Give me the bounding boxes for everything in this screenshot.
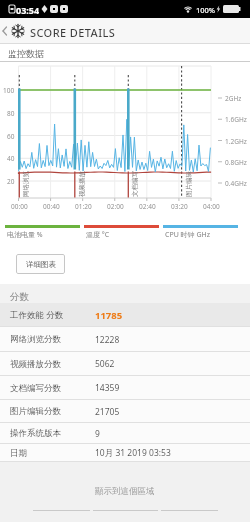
staticText: 01:20: [75, 202, 92, 210]
staticText: 21705: [95, 406, 120, 418]
button[interactable]: 图片编辑分数: [0, 400, 250, 423]
staticText: 03:54: [16, 4, 40, 16]
button[interactable]: 日期: [0, 444, 250, 462]
staticText: 02:00: [107, 202, 124, 210]
staticText: 00:00: [11, 202, 28, 210]
staticText: 网络浏览分数: [10, 334, 61, 345]
staticText: 5062: [95, 358, 115, 370]
button[interactable]: 工作效能 分数: [0, 303, 250, 327]
staticText: 20: [7, 177, 15, 185]
staticText: 14359: [95, 382, 120, 394]
button[interactable]: SCORE DETAILS: [0, 18, 250, 44]
staticText: 03:20: [171, 202, 188, 210]
staticText: CPU 时钟 GHz: [165, 230, 210, 240]
staticText: 温度 °C: [86, 230, 110, 240]
staticText: 02:40: [139, 202, 156, 210]
button[interactable]: 视频播放分数: [0, 352, 250, 376]
staticText: 2GHz: [225, 94, 242, 103]
staticText: SCORE DETAILS: [30, 25, 116, 40]
button[interactable]: 操作系统版本: [0, 423, 250, 444]
staticText: 11785: [95, 309, 123, 322]
staticText: 9: [95, 428, 100, 440]
staticText: 视频播放分数: [10, 359, 61, 370]
staticText: 40: [7, 154, 15, 162]
staticText: 1.6GHz: [225, 115, 247, 124]
staticText: 0.4GHz: [225, 179, 247, 188]
staticText: 图片编辑: [185, 171, 193, 197]
staticText: 顯示到這個區域: [95, 486, 155, 497]
staticText: 文档编写: [131, 171, 139, 197]
staticText: 60: [7, 132, 15, 140]
staticText: 监控数据: [8, 48, 44, 59]
staticText: 80: [7, 109, 15, 117]
staticText: 04:00: [203, 202, 220, 210]
staticText: 文档编写分数: [10, 383, 61, 394]
staticText: 视频播放: [78, 171, 86, 197]
staticText: 电池电量 %: [7, 230, 43, 240]
staticText: 00:40: [43, 202, 60, 210]
button[interactable]: 文档编写分数: [0, 376, 250, 400]
staticText: 分数: [10, 291, 29, 303]
staticText: 10月 31 2019 03:53: [95, 447, 171, 459]
staticText: 图片编辑分数: [10, 406, 61, 417]
staticText: 0.8GHz: [225, 158, 247, 167]
staticText: 网络浏览: [22, 171, 30, 197]
staticText: 1.2GHz: [225, 137, 247, 146]
staticText: 12228: [95, 334, 120, 346]
staticText: 详细图表: [26, 260, 56, 269]
staticText: 日期: [10, 448, 27, 459]
staticText: 100: [3, 86, 15, 94]
staticText: 工作效能 分数: [10, 309, 64, 321]
staticText: 操作系统版本: [10, 428, 61, 439]
button[interactable]: 详细图表: [16, 254, 65, 274]
button[interactable]: 网络浏览分数: [0, 327, 250, 352]
staticText: 100%: [196, 5, 216, 15]
